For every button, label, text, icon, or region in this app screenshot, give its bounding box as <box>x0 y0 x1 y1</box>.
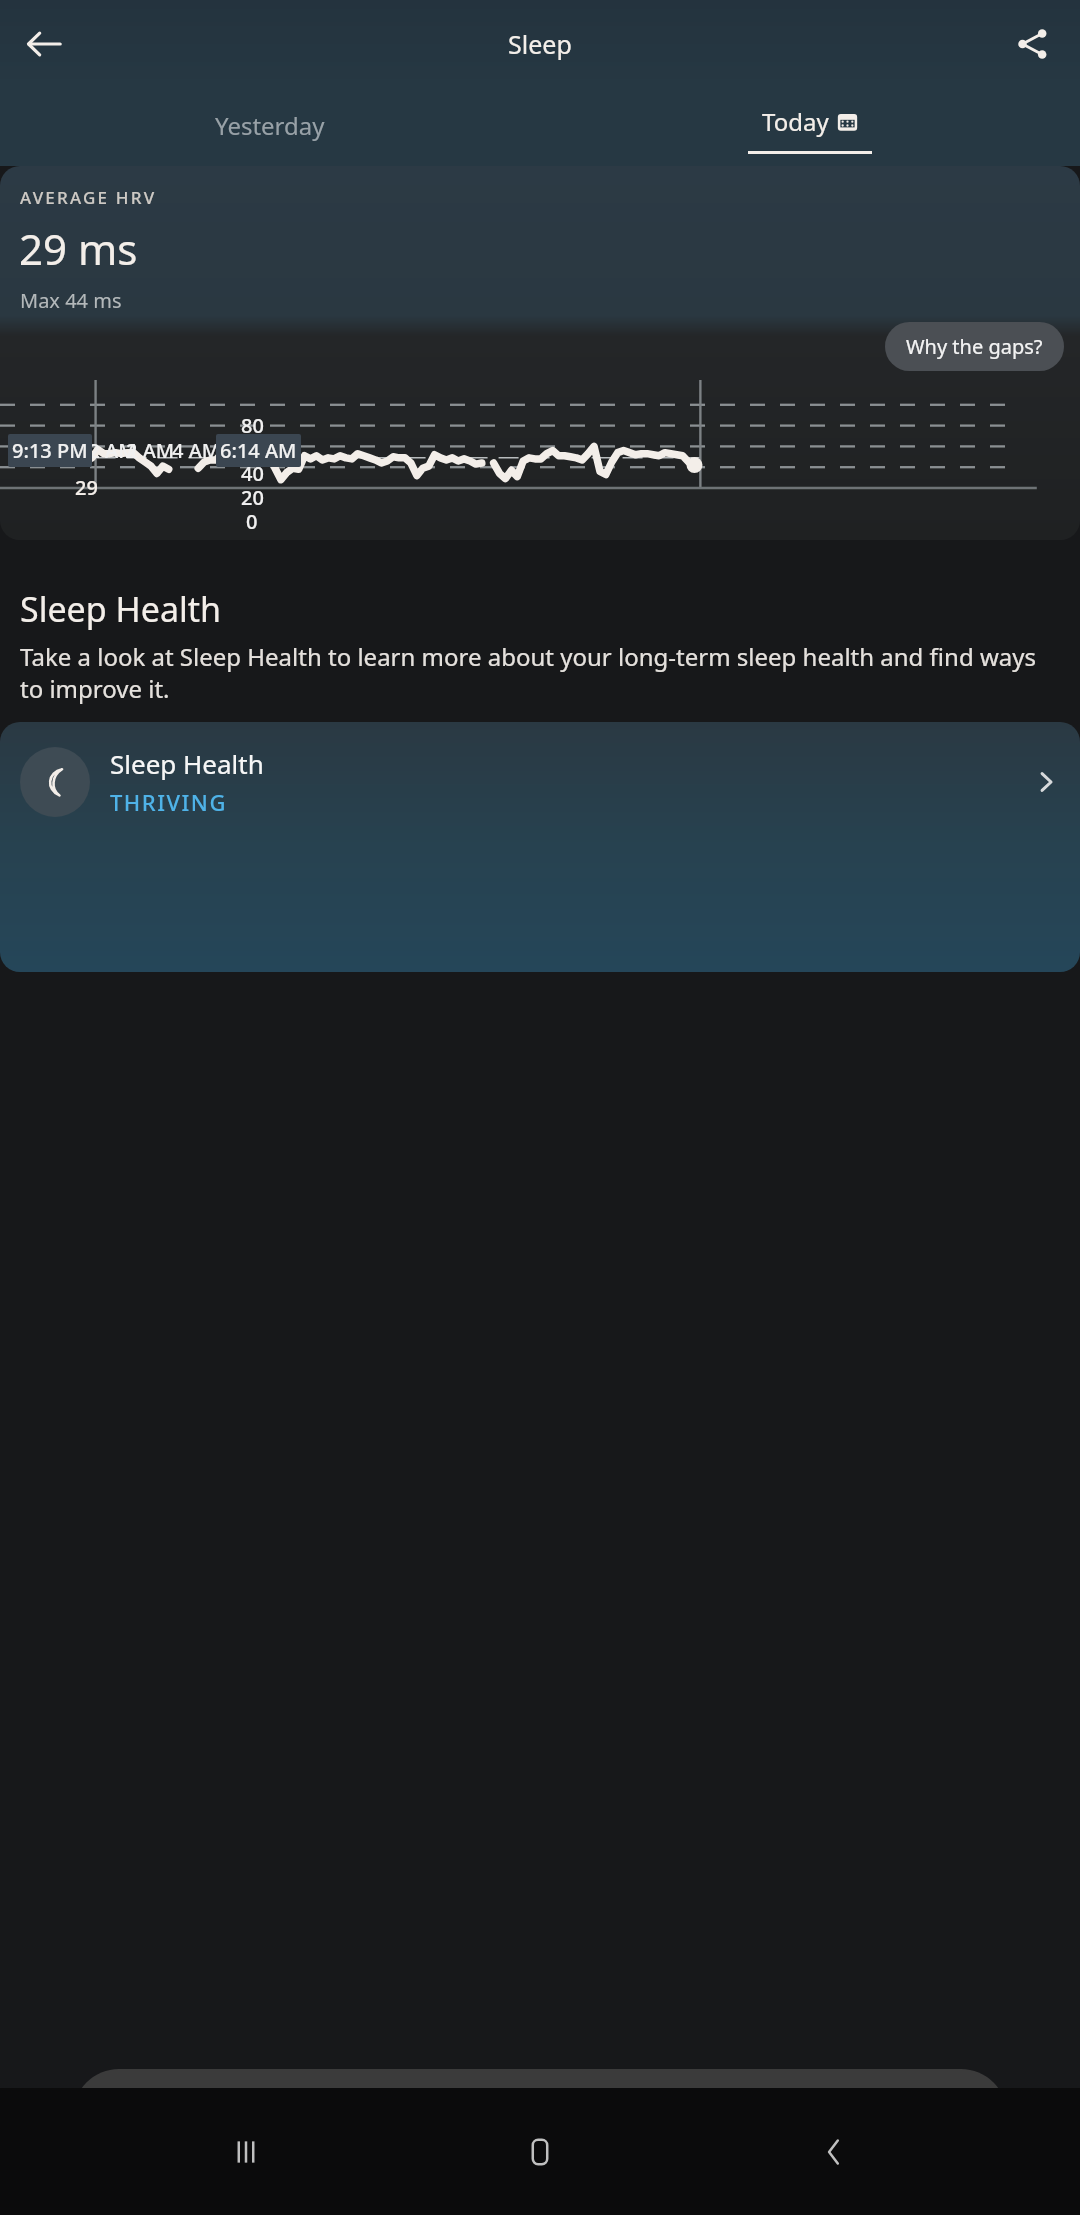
staticText: 80 <box>241 412 264 439</box>
staticText: Today <box>762 105 829 138</box>
staticText: Why the gaps? <box>906 333 1043 360</box>
button[interactable]: Sleep <box>342 2083 406 2147</box>
staticText: 2 AM <box>126 437 175 464</box>
staticText: 12 AM <box>77 437 137 464</box>
staticText: Yesterday <box>215 109 325 142</box>
staticText: Sleep <box>508 27 572 61</box>
button[interactable]: Home <box>492 2104 588 2200</box>
staticText: 0 <box>246 508 258 535</box>
button[interactable]: Share <box>996 8 1068 80</box>
button[interactable]: Today <box>540 88 1080 162</box>
staticText: 4 AM <box>172 437 221 464</box>
button[interactable]: Back <box>786 2104 882 2200</box>
staticText: 40 <box>241 460 264 487</box>
staticText: 29 ms <box>19 220 138 277</box>
staticText: Sleep Health <box>110 746 264 781</box>
staticText: 60 <box>241 436 264 463</box>
staticText: AVERAGE HRV <box>20 186 157 209</box>
button[interactable]: Recents <box>198 2104 294 2200</box>
staticText: Sleep Health <box>20 586 222 632</box>
staticText: 10 PM <box>33 437 92 464</box>
staticText: 9:13 PM <box>12 437 88 464</box>
button[interactable]: Energy <box>508 2083 572 2147</box>
button[interactable]: Sleep Health <box>0 722 1080 972</box>
button[interactable]: Activity <box>175 2083 239 2147</box>
staticText: Take a look at Sleep Health to learn mor… <box>20 640 1060 705</box>
staticText: 6:14 AM <box>220 437 297 464</box>
button[interactable]: Stress <box>841 2083 905 2147</box>
staticText: Max 44 ms <box>20 287 122 314</box>
button[interactable]: Yesterday <box>0 88 540 162</box>
staticText: 29 <box>75 474 98 501</box>
staticText: 20 <box>241 484 264 511</box>
staticText: THRIVING <box>110 787 227 817</box>
button[interactable]: Why the gaps? <box>885 322 1064 371</box>
button[interactable]: Back <box>8 8 80 80</box>
button[interactable]: Heart <box>674 2083 738 2147</box>
